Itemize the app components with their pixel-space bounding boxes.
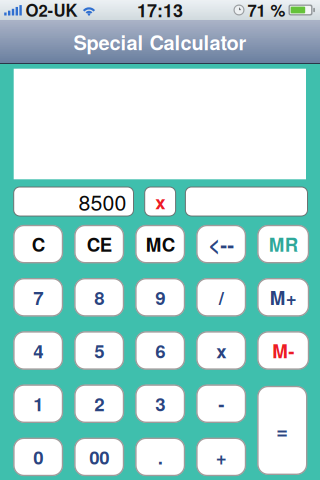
button[interactable]: x: [197, 332, 246, 369]
button[interactable]: 00: [75, 438, 124, 476]
button[interactable]: 0: [14, 438, 63, 476]
staticText: MC: [146, 231, 175, 257]
button[interactable]: -: [197, 385, 246, 422]
button[interactable]: 6: [136, 332, 185, 369]
button[interactable]: [185, 187, 307, 216]
staticText: 9: [155, 284, 165, 311]
staticText: C: [32, 231, 45, 257]
staticText: 8500: [78, 186, 126, 217]
staticText: O2-UK: [25, 0, 77, 22]
button[interactable]: C: [14, 225, 63, 263]
staticText: /: [219, 284, 224, 311]
button[interactable]: CE: [75, 225, 124, 263]
staticText: -: [218, 390, 224, 417]
staticText: 4: [33, 337, 43, 364]
button[interactable]: 3: [136, 385, 185, 422]
button[interactable]: 2: [75, 385, 124, 422]
staticText: 71 %: [247, 0, 285, 22]
button[interactable]: =: [258, 386, 307, 474]
staticText: 8: [94, 284, 104, 311]
staticText: 17:13: [137, 0, 183, 23]
button[interactable]: <--: [197, 225, 246, 263]
button[interactable]: 8500: [14, 187, 133, 216]
button[interactable]: M+: [258, 278, 309, 316]
staticText: +: [216, 443, 227, 470]
staticText: 6: [155, 337, 165, 364]
button[interactable]: M-: [258, 332, 309, 369]
staticText: MR: [269, 231, 298, 257]
staticText: 0: [33, 443, 43, 470]
staticText: 7: [33, 284, 43, 311]
button[interactable]: /: [197, 278, 246, 316]
staticText: .: [158, 443, 163, 470]
staticText: <--: [208, 229, 234, 259]
button[interactable]: 1: [14, 385, 63, 422]
button[interactable]: MC: [136, 225, 185, 263]
button[interactable]: MR: [258, 225, 309, 263]
button[interactable]: 9: [136, 278, 185, 316]
button[interactable]: 5: [75, 332, 124, 369]
staticText: CE: [87, 231, 112, 257]
staticText: 5: [94, 337, 104, 364]
staticText: 3: [155, 390, 165, 417]
button[interactable]: 7: [14, 278, 63, 316]
button[interactable]: +: [197, 438, 246, 476]
button[interactable]: 8: [75, 278, 124, 316]
staticText: Special Calculator: [73, 28, 246, 56]
staticText: x: [155, 188, 165, 215]
staticText: =: [276, 416, 288, 445]
staticText: 2: [94, 390, 104, 417]
staticText: M+: [270, 284, 297, 311]
staticText: M-: [272, 337, 294, 364]
button[interactable]: 4: [14, 332, 63, 369]
staticText: x: [216, 337, 226, 364]
button[interactable]: .: [136, 438, 185, 476]
button[interactable]: x: [145, 187, 176, 216]
staticText: 1: [33, 390, 43, 417]
staticText: 00: [89, 443, 109, 470]
